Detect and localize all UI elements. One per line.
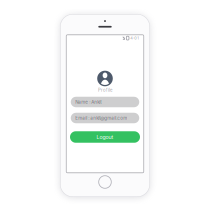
staticText: Name : Ankit: [75, 99, 101, 105]
staticText: Email : ankit@gmail.com: [75, 115, 127, 121]
staticText: Logout: [96, 134, 113, 140]
staticText: Profile: [98, 88, 112, 93]
button[interactable]: Name : Ankit: [71, 97, 139, 107]
staticText: 4:01: [130, 36, 139, 40]
button[interactable]: Email : ankit@gmail.com: [71, 113, 139, 123]
button[interactable]: Logout: [70, 131, 140, 143]
